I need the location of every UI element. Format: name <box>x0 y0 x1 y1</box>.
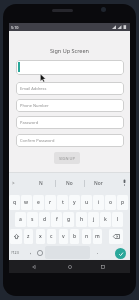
button[interactable]: Email Address <box>16 82 124 95</box>
staticText: Phone Number <box>20 103 49 108</box>
staticText: y <box>73 199 76 206</box>
staticText: > <box>12 180 15 186</box>
button[interactable]: w <box>21 195 32 210</box>
staticText: t <box>62 199 64 206</box>
button[interactable]: v <box>59 229 68 244</box>
button[interactable]: u <box>81 195 92 210</box>
button[interactable]: x <box>36 229 45 244</box>
staticText: o <box>109 199 113 206</box>
button[interactable]: g <box>63 212 74 227</box>
staticText: j <box>93 216 95 223</box>
staticText: No <box>66 180 73 187</box>
staticText: g <box>67 216 71 223</box>
button[interactable]: k <box>100 212 111 227</box>
button[interactable] <box>32 265 36 269</box>
button[interactable] <box>115 248 126 259</box>
staticText: ?123 <box>11 250 19 255</box>
button[interactable] <box>16 60 124 75</box>
button[interactable]: r <box>45 195 56 210</box>
button[interactable] <box>109 229 123 244</box>
staticText: Email Address <box>20 86 47 91</box>
button[interactable] <box>101 265 105 269</box>
staticText: Nor <box>94 180 103 187</box>
button[interactable]: j <box>88 212 99 227</box>
staticText: r <box>49 199 52 206</box>
button[interactable]: o <box>105 195 116 210</box>
staticText: h <box>80 216 84 223</box>
staticText: w <box>24 199 29 206</box>
button[interactable]: p <box>117 195 128 210</box>
staticText: Confirm Password <box>20 138 55 143</box>
button[interactable]: Confirm Password <box>16 134 124 147</box>
staticText: 5:10 <box>11 25 19 30</box>
button[interactable]: e <box>33 195 44 210</box>
button[interactable]: z <box>24 229 33 244</box>
staticText: b <box>73 233 77 240</box>
button[interactable]: c <box>47 229 56 244</box>
button[interactable]: l <box>112 212 123 227</box>
staticText: u <box>85 199 89 206</box>
button[interactable] <box>34 246 45 259</box>
button[interactable]: SIGN UP <box>54 152 80 164</box>
button[interactable]: i <box>93 195 104 210</box>
button[interactable] <box>10 229 22 244</box>
button[interactable]: . <box>92 246 103 259</box>
staticText: Password <box>20 120 39 125</box>
button[interactable] <box>122 179 127 187</box>
button[interactable]: m <box>93 229 102 244</box>
staticText: i <box>98 199 100 206</box>
staticText: v <box>62 233 65 240</box>
staticText: Sign Up Screen <box>50 47 89 54</box>
button[interactable]: t <box>57 195 68 210</box>
staticText: f <box>56 216 58 223</box>
button[interactable]: y <box>69 195 80 210</box>
button[interactable]: Password <box>16 116 124 129</box>
button[interactable]: s <box>27 212 38 227</box>
button[interactable]: d <box>39 212 50 227</box>
staticText: n <box>85 233 89 240</box>
button[interactable]: h <box>76 212 87 227</box>
staticText: x <box>39 233 42 240</box>
staticText: e <box>37 199 40 206</box>
button[interactable]: n <box>82 229 91 244</box>
staticText: , <box>30 249 32 256</box>
staticText: m <box>95 233 100 240</box>
staticText: d <box>43 216 47 223</box>
staticText: c <box>50 233 53 240</box>
button[interactable]: f <box>51 212 62 227</box>
staticText: p <box>121 199 125 206</box>
button[interactable]: q <box>9 195 20 210</box>
staticText: a <box>19 216 22 223</box>
staticText: q <box>13 199 17 206</box>
staticText: SIGN UP <box>59 156 75 161</box>
staticText: s <box>31 216 34 223</box>
staticText: l <box>117 216 119 223</box>
button[interactable]: a <box>15 212 26 227</box>
button[interactable]: , <box>25 246 36 259</box>
staticText: k <box>104 216 107 223</box>
button[interactable] <box>68 265 72 269</box>
button[interactable]: ?123 <box>8 246 21 259</box>
button[interactable]: Phone Number <box>16 99 124 112</box>
staticText: . <box>97 249 99 256</box>
staticText: N <box>39 180 43 187</box>
button[interactable]: b <box>70 229 79 244</box>
staticText: z <box>27 233 30 240</box>
